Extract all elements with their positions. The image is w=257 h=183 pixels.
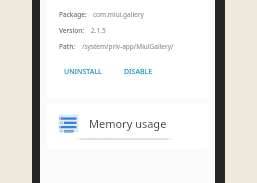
staticText: UNINSTALL bbox=[64, 67, 102, 77]
button[interactable]: UNINSTALL bbox=[59, 64, 107, 80]
button[interactable]: DISABLE bbox=[119, 64, 158, 80]
staticText: 2.1.5 bbox=[91, 26, 106, 35]
staticText: Version: bbox=[59, 26, 85, 35]
staticText: Memory usage bbox=[89, 116, 167, 131]
staticText: /system/priv-app/MiuiGallery/MiuiGallery… bbox=[82, 42, 198, 51]
staticText: DISABLE bbox=[124, 67, 153, 77]
staticText: Path: bbox=[59, 42, 76, 51]
other: Memory usage icon bbox=[59, 114, 78, 133]
staticText: com.miui.gallery bbox=[93, 10, 144, 19]
staticText: Package: bbox=[59, 10, 87, 19]
